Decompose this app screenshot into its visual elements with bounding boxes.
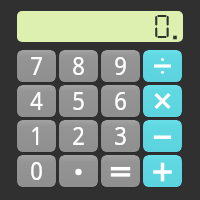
button[interactable]: 1 [17,120,56,152]
staticText: 1 [30,120,43,150]
button[interactable]: 6 [101,85,140,117]
button[interactable]: Equals [101,155,140,187]
button[interactable]: Decimal point [59,155,98,187]
staticText: 3 [114,120,127,150]
button[interactable]: Divide [143,50,182,82]
staticText: 7 [30,50,43,80]
staticText: 4 [30,85,43,115]
button[interactable]: Subtract [143,120,182,152]
button[interactable]: 2 [59,120,98,152]
button[interactable]: 4 [17,85,56,117]
staticText: 8 [72,50,85,80]
button[interactable]: Multiply [143,85,182,117]
button[interactable]: 9 [101,50,140,82]
button[interactable]: 8 [59,50,98,82]
button[interactable]: 3 [101,120,140,152]
staticText: 6 [114,85,127,115]
staticText: 5 [72,85,85,115]
button[interactable]: Add [143,155,182,187]
staticText: 2 [72,120,85,150]
staticText: 9 [114,50,127,80]
staticText: 0 [30,155,43,185]
button[interactable]: 0 [17,155,56,187]
button[interactable]: 7 [17,50,56,82]
button[interactable]: 5 [59,85,98,117]
